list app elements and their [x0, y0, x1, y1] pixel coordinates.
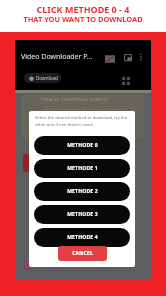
button[interactable]: METHODE 2 — [34, 182, 130, 201]
button[interactable]: Picture in picture — [122, 52, 134, 64]
button[interactable]: METHODE 1 — [34, 159, 130, 178]
staticText: METHODE 0 — [67, 142, 98, 149]
staticText: Select the desired method to download, t… — [35, 115, 129, 127]
button[interactable]: Download — [24, 73, 61, 83]
staticText: - Share the video to All Video Downloade… — [41, 105, 125, 111]
button[interactable]: METHODE 4 — [34, 228, 130, 247]
staticText: How to Download videos? — [41, 95, 109, 103]
staticText: METHODE 1 — [67, 165, 98, 172]
staticText: THAT YOU WANT TO DOWNLOAD — [0, 14, 166, 24]
staticText: METHODE 3 — [67, 211, 98, 218]
staticText: METHODE 2 — [67, 188, 98, 195]
staticText: CLICK METHODE 0 - 4 — [0, 3, 166, 15]
button[interactable]: CANCEL — [58, 246, 107, 261]
button[interactable]: More options — [136, 52, 146, 62]
staticText: Download — [36, 75, 58, 81]
staticText: CANCEL — [72, 250, 93, 257]
button[interactable]: Remove ads — [103, 52, 116, 65]
button[interactable]: METHODE 0 — [34, 136, 130, 155]
staticText: Video Downloader P... — [21, 52, 93, 62]
button[interactable]: Grid view — [120, 75, 132, 87]
button[interactable]: METHODE 3 — [34, 205, 130, 224]
staticText: METHODE 4 — [67, 234, 98, 241]
